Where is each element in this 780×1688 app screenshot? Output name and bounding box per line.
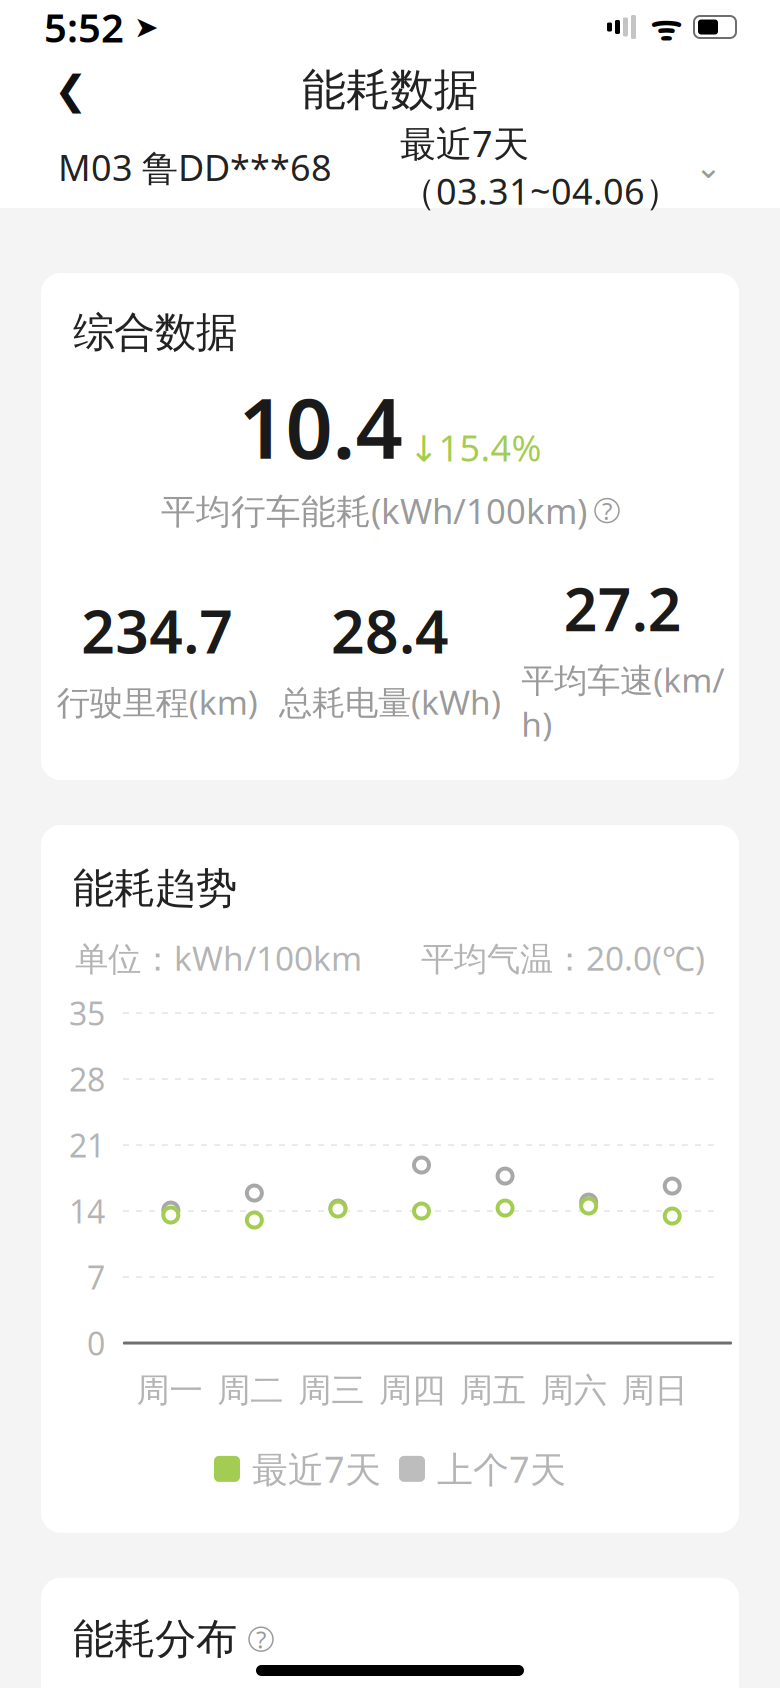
staticText: 35 [69,992,105,1034]
staticText: ᯤ [650,4,682,50]
staticText: ⌄ [695,149,722,185]
staticText: 周日 [622,1370,688,1411]
button[interactable]: 能耗分布说明 [249,1627,273,1651]
staticText: 平均气温：20.0(℃) [421,936,705,980]
staticText: 周二 [217,1370,283,1411]
staticText: 单位：kWh/100km [75,936,362,980]
staticText: ↓15.4% [408,424,541,471]
staticText: 能耗数据 [302,63,478,117]
button[interactable]: 最近7天（03.31~04.06） [400,119,722,215]
staticText: 上个7天 [437,1445,566,1493]
staticText: 周三 [298,1370,364,1411]
staticText: ? [602,495,612,526]
button[interactable]: M03 鲁DD***68 [58,143,332,191]
staticText: 28 [69,1058,105,1100]
staticText: 周一 [136,1370,202,1411]
staticText: ? [256,1623,266,1655]
staticText: 7 [87,1256,105,1298]
staticText: 能耗趋势 [73,863,237,914]
staticText: 综合数据 [73,307,237,358]
staticText: 27.2 [564,570,682,647]
staticText: 周六 [541,1370,607,1411]
staticText: 周四 [379,1370,445,1411]
staticText: ➤ [124,10,159,44]
staticText: 14 [69,1190,105,1232]
staticText: 能耗分布 [73,1614,237,1665]
staticText: 234.7 [81,592,233,670]
staticText: ❮ [54,67,88,113]
staticText: 10.4 [238,372,402,482]
staticText: 0 [87,1322,105,1364]
staticText: 平均行车能耗(kWh/100km) [161,487,587,533]
button[interactable]: 平均行车能耗说明 [595,499,619,523]
staticText: 行驶里程(km) [57,680,258,724]
staticText: 总耗电量(kWh) [279,680,501,724]
staticText: 最近7天（03.31~04.06） [400,119,681,215]
button[interactable]: 返回 [36,59,106,121]
staticText: 28.4 [331,592,449,670]
staticText: 平均车速(km/h) [521,657,724,746]
staticText: M03 鲁DD***68 [58,143,332,191]
staticText: 最近7天 [252,1445,381,1493]
staticText: 21 [69,1124,105,1166]
staticText: 周五 [460,1370,526,1411]
staticText: 5:52 [44,0,124,53]
